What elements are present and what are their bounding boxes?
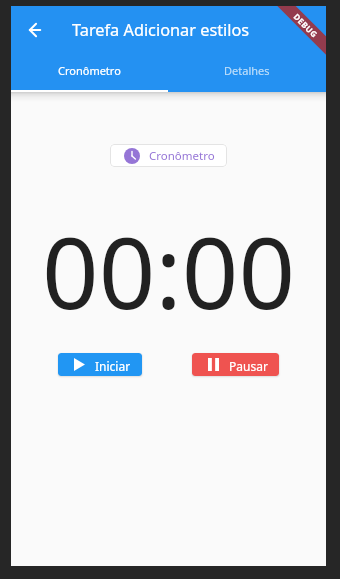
staticText: Detalhes — [224, 63, 270, 78]
staticText: DEBUG — [291, 11, 320, 40]
staticText: Cronômetro — [149, 148, 215, 164]
staticText: Tarefa Adicionar estilos — [72, 19, 250, 41]
button[interactable]: Cronômetro — [110, 144, 227, 167]
button[interactable]: Iniciar — [58, 353, 142, 376]
staticText: Cronômetro — [58, 63, 121, 78]
button[interactable]: Cronômetro — [11, 54, 168, 92]
button[interactable]: Pausar — [192, 353, 279, 376]
staticText: Pausar — [229, 358, 268, 374]
staticText: Iniciar — [95, 358, 131, 374]
button[interactable]: Detalhes — [168, 54, 326, 92]
button[interactable]: Back — [11, 6, 59, 54]
staticText: 00:00 — [42, 203, 296, 338]
